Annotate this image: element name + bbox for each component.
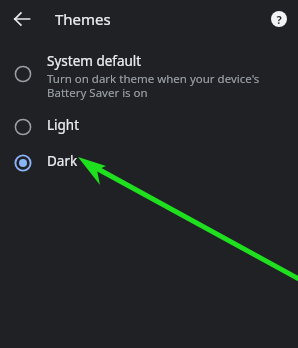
button[interactable]: Dark — [0, 144, 298, 180]
staticText: Light — [47, 116, 80, 134]
staticText: System default — [47, 52, 142, 70]
staticText: Turn on dark theme when your device's Ba… — [47, 71, 286, 100]
button[interactable]: Help — [263, 3, 295, 35]
button[interactable]: Back — [6, 3, 38, 35]
button[interactable]: Light — [0, 108, 298, 144]
button[interactable]: System default — [0, 44, 298, 108]
staticText: Themes — [55, 9, 111, 29]
staticText: Dark — [47, 152, 78, 170]
staticText: ? — [276, 12, 282, 27]
